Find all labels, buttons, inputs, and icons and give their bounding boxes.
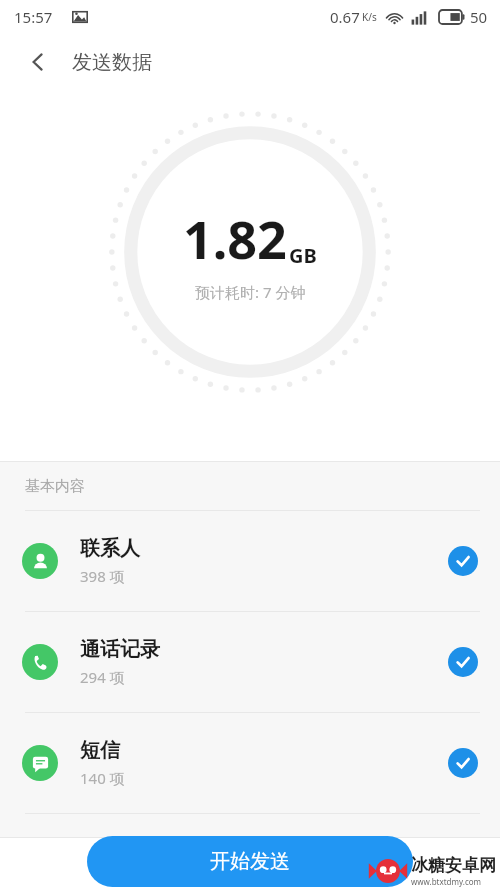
staticText: 398 项 xyxy=(80,566,125,586)
button[interactable]: 通话记录 xyxy=(0,612,500,712)
button[interactable]: Selected xyxy=(448,748,478,778)
staticText: GB xyxy=(289,242,317,269)
staticText: 294 项 xyxy=(80,667,125,687)
staticText: 预计耗时: 7 分钟 xyxy=(195,282,306,302)
button[interactable]: 开始发送 xyxy=(87,836,413,887)
button[interactable]: Back xyxy=(14,38,62,86)
staticText: 1.82 xyxy=(183,203,287,274)
button[interactable]: Selected xyxy=(448,647,478,677)
staticText: 0.67 xyxy=(330,7,360,27)
staticText: 冰糖安卓网 xyxy=(411,855,496,876)
button[interactable]: 联系人 xyxy=(0,511,500,611)
staticText: 通话记录 xyxy=(80,637,160,662)
staticText: 开始发送 xyxy=(210,849,290,874)
staticText: 15:57 xyxy=(14,7,53,27)
button[interactable]: 短信 xyxy=(0,713,500,813)
staticText: 联系人 xyxy=(80,536,140,561)
staticText: www.btxtdmy.com xyxy=(411,876,482,887)
staticText: 发送数据 xyxy=(72,50,152,75)
staticText: 短信 xyxy=(80,738,120,763)
staticText: K/s xyxy=(362,10,377,24)
button[interactable]: Selected xyxy=(448,546,478,576)
staticText: 基本内容 xyxy=(25,477,85,496)
staticText: 140 项 xyxy=(80,768,125,788)
staticText: 50 xyxy=(470,7,488,27)
